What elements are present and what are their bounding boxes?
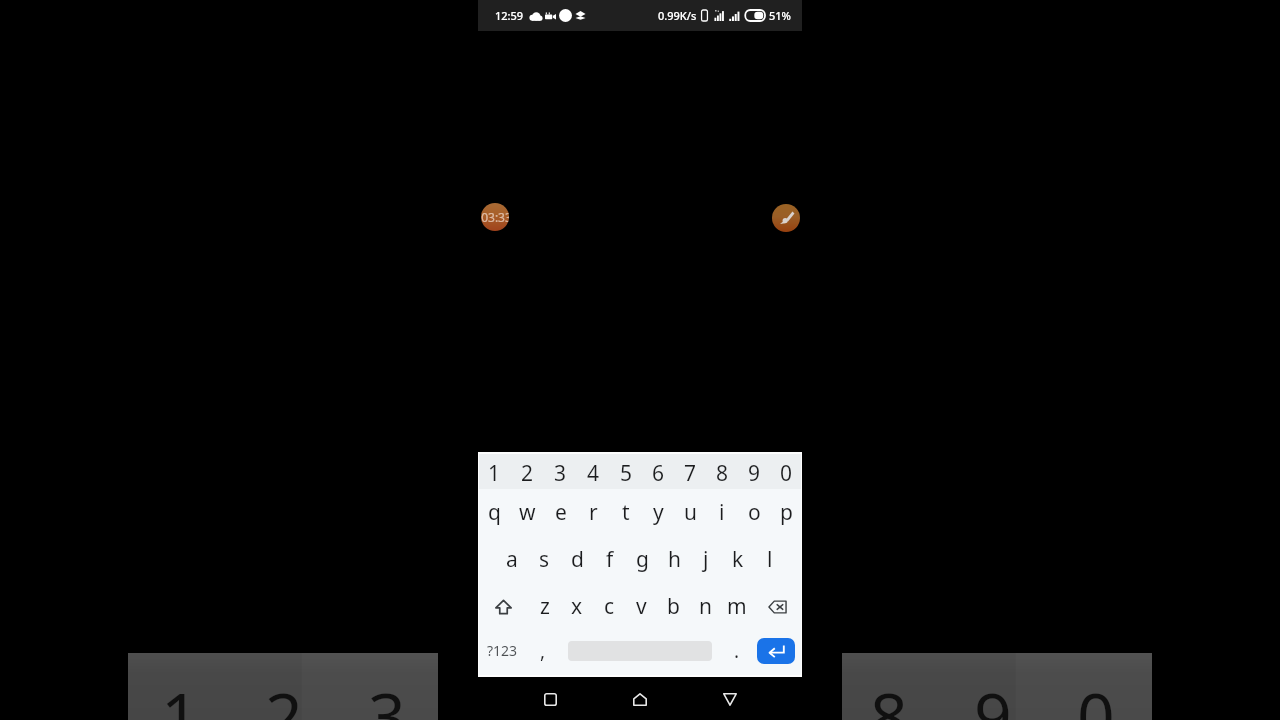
button[interactable]: 7 (674, 455, 706, 492)
staticText: 8 (716, 459, 729, 488)
staticText: v (636, 592, 647, 621)
button[interactable]: t (610, 489, 642, 536)
staticText: e (555, 498, 567, 527)
staticText: n (699, 592, 712, 621)
staticText: 1 (488, 459, 501, 488)
button[interactable]: , (527, 627, 559, 674)
button[interactable]: p (770, 489, 802, 536)
staticText: b (667, 592, 680, 621)
staticText: g (636, 545, 649, 574)
staticText: 9 (974, 670, 1012, 720)
staticText: 2 (265, 670, 303, 720)
button[interactable]: 2 (511, 455, 544, 492)
staticText: w (519, 498, 536, 527)
staticText: ?123 (487, 641, 518, 660)
staticText: 12:59 (495, 8, 524, 23)
button[interactable]: 6 (642, 455, 674, 492)
button[interactable]: g (626, 536, 658, 583)
button[interactable]: Shift (478, 583, 528, 630)
staticText: 4 (587, 459, 600, 488)
staticText: 7 (684, 459, 697, 488)
button[interactable]: y (642, 489, 674, 536)
staticText: 0 (780, 459, 793, 488)
button[interactable]: i (706, 489, 738, 536)
button[interactable]: c (593, 583, 625, 630)
button[interactable]: v (625, 583, 657, 630)
button[interactable]: f (594, 536, 626, 583)
staticText: a (506, 545, 518, 574)
button[interactable]: 3 (544, 455, 577, 492)
staticText: 0.99K/s (658, 8, 697, 23)
staticText: d (571, 545, 584, 574)
button[interactable]: o (738, 489, 770, 536)
staticText: 8 (870, 670, 908, 720)
button[interactable]: b (657, 583, 689, 630)
button[interactable]: 5 (610, 455, 642, 492)
staticText: i (719, 498, 725, 527)
button[interactable]: . (721, 627, 753, 674)
staticText: 1 (161, 670, 199, 720)
staticText: 3 (368, 670, 406, 720)
button[interactable]: ?123 (478, 627, 527, 674)
staticText: m (727, 592, 747, 621)
staticText: 6 (652, 459, 665, 488)
staticText: 03:33 (481, 209, 509, 225)
button[interactable]: 0 (770, 455, 802, 492)
button[interactable]: Enter (753, 627, 802, 674)
staticText: 51% (769, 8, 791, 23)
staticText: f (606, 545, 614, 574)
staticText: . (734, 638, 740, 664)
staticText: p (780, 498, 793, 527)
staticText: 5 (620, 459, 633, 488)
button[interactable]: Back (713, 677, 747, 720)
button[interactable]: Recent apps (533, 677, 567, 720)
staticText: 0 (1077, 670, 1115, 720)
staticText: t (622, 498, 630, 527)
button[interactable]: w (511, 489, 544, 536)
button[interactable]: 8 (706, 455, 738, 492)
button[interactable]: m (721, 583, 753, 630)
button[interactable]: Backspace (753, 583, 802, 630)
staticText: o (748, 498, 761, 527)
staticText: k (732, 545, 744, 574)
staticText: j (703, 545, 709, 574)
button[interactable]: Brush (772, 204, 800, 232)
staticText: u (684, 498, 697, 527)
staticText: z (540, 592, 550, 621)
button[interactable]: Home (623, 677, 657, 720)
button[interactable]: r (577, 489, 610, 536)
button[interactable]: d (561, 536, 594, 583)
staticText: y (653, 498, 664, 527)
staticText: 3 (554, 459, 567, 488)
button[interactable]: x (561, 583, 593, 630)
button[interactable]: z (528, 583, 561, 630)
button[interactable]: u (674, 489, 706, 536)
staticText: , (540, 638, 546, 664)
button[interactable]: k (722, 536, 754, 583)
button[interactable]: Recording timer (481, 203, 509, 231)
staticText: 9 (748, 459, 761, 488)
button[interactable]: e (544, 489, 577, 536)
button[interactable]: l (754, 536, 786, 583)
button[interactable]: s (528, 536, 561, 583)
staticText: r (589, 498, 598, 527)
staticText: c (604, 592, 615, 621)
staticText: l (767, 545, 773, 574)
button[interactable]: 1 (478, 455, 511, 492)
staticText: h (668, 545, 681, 574)
staticText: s (539, 545, 550, 574)
button[interactable]: j (690, 536, 722, 583)
button[interactable]: n (689, 583, 721, 630)
button[interactable]: q (478, 489, 511, 536)
button[interactable]: Space (559, 627, 721, 674)
button[interactable]: h (658, 536, 690, 583)
staticText: q (488, 498, 501, 527)
button[interactable]: 4 (577, 455, 610, 492)
staticText: x (571, 592, 583, 621)
button[interactable]: a (495, 536, 528, 583)
staticText: 2 (521, 459, 534, 488)
button[interactable]: 9 (738, 455, 770, 492)
